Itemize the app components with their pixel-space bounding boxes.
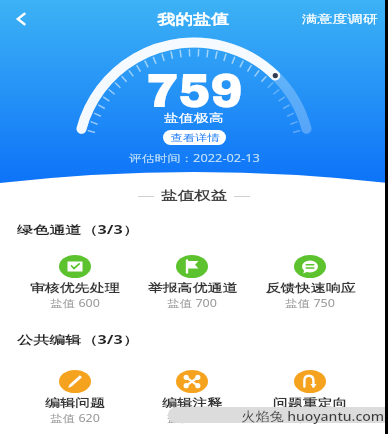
staticText: 火焰兔 huoyantu.com (241, 407, 385, 425)
staticText: 编辑注释 (162, 396, 222, 410)
staticText: 盐值 650 (167, 411, 217, 425)
staticText: 盐值极高 (164, 111, 224, 125)
button[interactable]: 反馈快速响应 (251, 255, 369, 310)
staticText: 盐值 620 (50, 411, 100, 425)
staticText: 759 (146, 65, 243, 117)
staticText: 问题重定向 (272, 396, 348, 410)
staticText: 审核优先处理 (30, 281, 119, 295)
staticText: 绿色通道（3/3） (17, 222, 139, 238)
staticText: 举报高优通道 (148, 281, 237, 295)
button[interactable]: 举报高优通道 (133, 255, 251, 310)
staticText: 盐值 750 (285, 296, 335, 310)
button[interactable]: 查看详情 (163, 130, 226, 145)
button[interactable]: 问题重定向 (251, 370, 369, 425)
staticText: 满意度调研 (302, 12, 378, 26)
button[interactable]: 编辑注释 (133, 370, 251, 425)
staticText: 盐值 600 (50, 296, 100, 310)
staticText: 查看详情 (170, 132, 220, 144)
staticText: 评估时间：2022-02-13 (129, 151, 260, 165)
button[interactable]: 满意度调研 (305, 5, 388, 33)
button[interactable]: Back (0, 0, 42, 38)
staticText: 我的盐值 (157, 11, 229, 28)
button[interactable]: 审核优先处理 (16, 255, 133, 310)
staticText: 盐值 700 (285, 411, 335, 425)
staticText: 盐值 700 (167, 296, 217, 310)
staticText: 盐值权益 (161, 188, 227, 204)
button[interactable]: 编辑问题 (16, 370, 133, 425)
staticText: 公共编辑（3/3） (17, 332, 139, 348)
staticText: 反馈快速响应 (266, 281, 355, 295)
staticText: 编辑问题 (45, 396, 105, 410)
